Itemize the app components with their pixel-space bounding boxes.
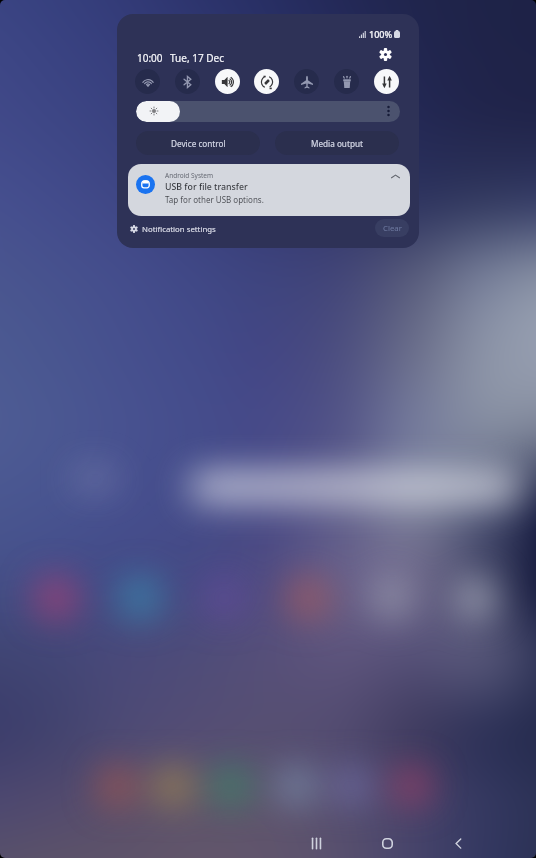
staticText: Android System [165, 171, 214, 180]
staticText: Media output [311, 138, 363, 149]
button[interactable]: Home [361, 824, 413, 858]
button[interactable]: Notification settings [130, 216, 216, 242]
staticText: Device control [171, 138, 226, 149]
button[interactable]: Bluetooth [175, 69, 200, 94]
button[interactable]: Collapse [388, 169, 402, 183]
button[interactable]: Media output [275, 131, 399, 155]
button[interactable]: Recents [290, 824, 342, 858]
staticText: Tue, 17 Dec [170, 51, 224, 65]
button[interactable]: Mobile data [374, 69, 399, 94]
button[interactable]: Back [432, 824, 484, 858]
button[interactable]: Flashlight [334, 69, 359, 94]
staticText: 10:00 [137, 51, 163, 65]
button[interactable]: Airplane mode [294, 69, 319, 94]
button[interactable]: Clear [375, 219, 409, 237]
staticText: USB for file transfer [165, 181, 248, 193]
button[interactable]: Settings [374, 43, 396, 65]
staticText: Tap for other USB options. [165, 194, 264, 205]
button[interactable]: Brightness [136, 101, 400, 122]
button[interactable]: Auto rotate [254, 69, 279, 94]
staticText: Clear [383, 223, 402, 234]
button[interactable]: Sound [215, 69, 240, 94]
button[interactable]: Device control [136, 131, 260, 155]
staticText: 100% [369, 28, 393, 40]
button[interactable]: Wi-Fi [135, 69, 160, 94]
button[interactable]: Android System [128, 164, 410, 216]
staticText: Notification settings [142, 224, 216, 235]
